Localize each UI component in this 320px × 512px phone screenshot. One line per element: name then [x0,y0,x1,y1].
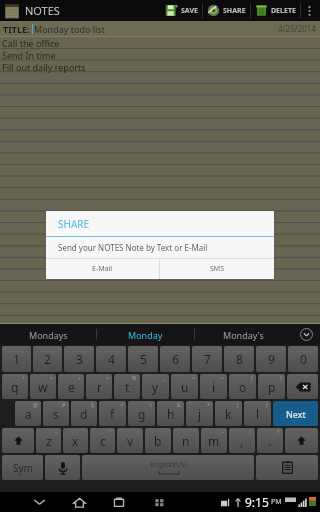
button[interactable]: & [157,401,184,426]
button[interactable]: Screenshot [148,493,170,511]
button[interactable]: 8 [224,346,254,372]
button[interactable]: - [201,428,227,453]
button[interactable]: Recents [108,493,130,511]
staticText: 4 [108,351,115,367]
staticText: ] [280,375,282,382]
staticText: p [268,379,276,395]
button[interactable]: \ [128,401,155,426]
staticText: ? [277,429,280,436]
staticText: 5 [140,351,147,367]
staticText: i [212,379,216,395]
button[interactable]: 7 [192,346,222,372]
staticText: c [100,433,106,449]
button[interactable]: ( [215,401,242,426]
button[interactable]: 2 [33,346,62,372]
button[interactable]: Monday [97,324,194,345]
staticText: o [239,379,247,395]
staticText: % [132,375,137,382]
staticText: d [80,406,88,422]
button[interactable]: Shift [2,428,34,453]
button[interactable]: 3 [64,346,94,372]
staticText: z [46,433,52,449]
button[interactable]: SHARE [203,0,250,21]
staticText: 0 [300,351,307,367]
staticText: 1 [13,351,20,367]
button[interactable]: Monday's [195,324,292,345]
staticText: Fill out daily reports [2,61,86,73]
button[interactable]: 5 [128,346,158,372]
button[interactable]: ~ [36,428,61,453]
button[interactable]: ? [257,428,283,453]
button[interactable]: % [114,374,140,399]
button[interactable]: Backspace [287,374,318,399]
button[interactable]: SMS [160,259,274,279]
button[interactable]: Clipboard [256,455,318,480]
staticText: Send your NOTES Note by Text or E-Mail [58,242,208,253]
button[interactable]: / [99,401,126,426]
button[interactable]: < [171,374,198,399]
button[interactable]: # [43,401,69,426]
button[interactable]: More options [301,0,317,21]
button[interactable]: * [186,401,213,426]
button[interactable]: Space [82,455,254,480]
button[interactable]: Back [28,493,50,511]
staticText: , [240,433,244,449]
staticText: English(US) [150,460,187,470]
button[interactable]: Next [273,401,318,426]
button[interactable]: SAVE [161,0,202,21]
button[interactable]: Home [68,493,90,511]
staticText: ; [138,429,140,436]
staticText: t [125,379,130,395]
staticText: Call the office [2,37,60,49]
staticText: k [225,406,232,422]
button[interactable]: Shift [285,428,318,453]
button[interactable]: $ [71,401,97,426]
staticText: SHARE [58,217,90,231]
button[interactable]: + [2,374,28,399]
staticText: Mondays [29,329,68,341]
button[interactable]: DELETE [251,0,300,21]
staticText: / [121,402,123,409]
staticText: e [68,379,75,395]
staticText: ~ [55,429,58,436]
button[interactable]: ' [173,428,199,453]
staticText: _ [163,375,166,382]
staticText: : [166,429,168,436]
staticText: < [192,375,195,382]
button[interactable]: Voice input [45,455,80,480]
button[interactable]: ; [117,428,143,453]
button[interactable]: TITLE: [0,21,320,36]
staticText: ' [194,429,196,436]
button[interactable]: [ [229,374,256,399]
button[interactable]: = [86,374,112,399]
button[interactable]: @ [15,401,41,426]
button[interactable]: 1 [2,346,31,372]
button[interactable]: 4 [96,346,126,372]
button[interactable]: ÷ [58,374,84,399]
staticText: w [38,379,48,395]
button[interactable]: _ [142,374,169,399]
button[interactable]: Mondays [0,324,96,345]
button[interactable]: > [200,374,227,399]
staticText: g [138,406,146,422]
button[interactable]: 9 [256,346,286,372]
staticText: h [167,406,175,422]
button[interactable]: × [30,374,56,399]
button[interactable]: More suggestions [292,324,320,345]
staticText: PM [271,497,282,507]
button[interactable]: " [90,428,115,453]
staticText: f [110,406,115,422]
button[interactable]: Sym [2,455,43,480]
staticText: - [222,429,224,436]
staticText: u [181,379,189,395]
button[interactable]: 0 [288,346,318,372]
button[interactable]: ] [258,374,285,399]
button[interactable]: 6 [160,346,190,372]
staticText: 7 [204,351,211,367]
button[interactable]: ) [244,401,271,426]
button[interactable]: ` [63,428,88,453]
button[interactable]: E-Mail [46,259,159,279]
button[interactable]: ! [229,428,255,453]
button[interactable]: : [145,428,171,453]
staticText: j [198,406,202,422]
